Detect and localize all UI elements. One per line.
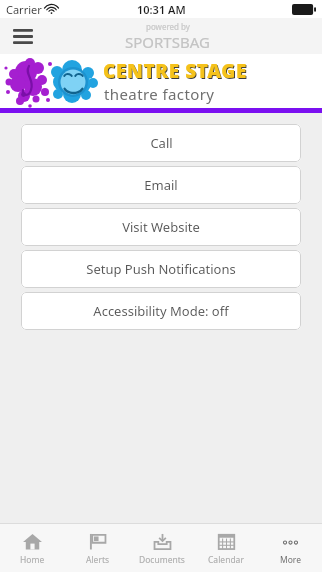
staticText: Call	[150, 134, 173, 152]
staticText: Visit Website	[122, 218, 200, 236]
button[interactable]: Accessibility Mode: off	[21, 292, 301, 330]
staticText: Carrier	[6, 2, 42, 17]
staticText: CENTRE STAGE	[104, 59, 249, 85]
staticText: Calendar	[208, 554, 244, 566]
button[interactable]: Email	[21, 166, 301, 204]
staticText: Accessibility Mode: off	[93, 302, 229, 320]
button[interactable]: Calendar	[194, 524, 258, 572]
staticText: theatre factory	[104, 84, 215, 104]
staticText: Alerts	[86, 554, 110, 566]
staticText: Home	[20, 554, 45, 566]
button[interactable]: Home	[0, 524, 65, 572]
staticText: Setup Push Notifications	[86, 260, 236, 278]
staticText: 10:31 AM	[137, 2, 186, 17]
button[interactable]: Menu	[8, 21, 38, 51]
staticText: Email	[144, 176, 178, 194]
button[interactable]: Visit Website	[21, 208, 301, 246]
staticText: Documents	[139, 554, 185, 566]
button[interactable]: Documents	[130, 524, 194, 572]
button[interactable]: More	[258, 524, 322, 572]
staticText: powered by	[146, 21, 190, 32]
button[interactable]: Setup Push Notifications	[21, 250, 301, 288]
button[interactable]: Call	[21, 124, 301, 162]
staticText: More	[280, 554, 301, 566]
button[interactable]: Alerts	[65, 524, 130, 572]
staticText: SPORTSBAG	[125, 32, 210, 52]
staticText: CENTRE STAGE	[103, 58, 248, 84]
